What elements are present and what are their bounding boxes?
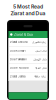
- button[interactable]: Dua Tawassul: [8, 55, 47, 64]
- staticText: 5 Most Read: [13, 4, 43, 10]
- staticText: زيارة عاشوراء: [32, 39, 46, 45]
- button[interactable]: Dua Kumayl: [8, 47, 47, 55]
- staticText: Ziarat & Dua: [14, 33, 33, 36]
- button[interactable]: Ziarat Jamia: [8, 72, 47, 81]
- staticText: دعاء كميل: [35, 48, 46, 53]
- button[interactable]: Dua e Nudba: [8, 64, 47, 72]
- staticText: Dua Kumayl: [10, 49, 26, 52]
- staticText: Ziarat Ashura: [10, 40, 27, 44]
- staticText: Dua Tawassul: [10, 58, 27, 61]
- staticText: دعاء الندبة: [35, 65, 46, 71]
- button[interactable]: Ziarat Ashura: [8, 38, 47, 47]
- staticText: Dua e Nudba: [10, 66, 28, 69]
- staticText: زيارة جامعة: [34, 74, 46, 79]
- button[interactable]: Ziarat & Dua: [8, 31, 47, 38]
- staticText: Ziarat and Dua: [10, 10, 45, 16]
- staticText: Ziarat Jamia: [10, 75, 25, 78]
- staticText: دعاء التوسل: [33, 56, 46, 62]
